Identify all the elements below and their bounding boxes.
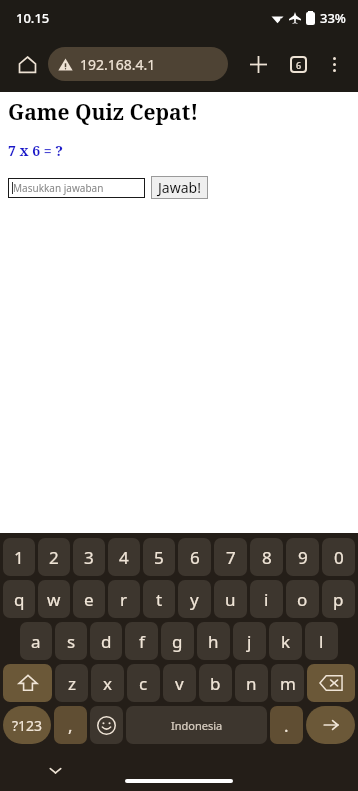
button[interactable]: Hide keyboard [42,757,68,783]
button[interactable]: New tab [240,46,276,82]
button[interactable]: 6 [178,538,211,576]
staticText: g [172,630,183,653]
staticText: ?123 [12,716,43,735]
staticText: Game Quiz Cepat! [8,98,199,127]
staticText: y [190,588,199,611]
staticText: n [246,672,257,695]
staticText: k [281,630,291,653]
button[interactable]: p [322,580,355,618]
button[interactable]: u [214,580,247,618]
staticText: i [264,588,269,611]
button[interactable]: k [269,622,302,660]
button[interactable]: 5 [143,538,175,576]
button[interactable]: l [305,622,338,660]
button[interactable]: Emoji [90,706,123,744]
staticText: v [175,672,184,695]
button[interactable]: d [90,622,122,660]
button[interactable]: x [91,664,124,702]
button[interactable]: . [270,706,303,744]
button[interactable]: Enter [306,706,355,744]
staticText: Jawab! [158,178,201,197]
button[interactable]: ?123 [3,706,51,744]
staticText: e [84,588,94,611]
staticText: o [297,588,308,611]
button[interactable]: 192.168.4.1 [48,47,228,81]
button[interactable]: m [271,664,304,702]
staticText: d [101,630,112,653]
button[interactable]: Shift [3,664,52,702]
button[interactable]: o [286,580,319,618]
button[interactable]: c [127,664,160,702]
staticText: s [67,630,76,653]
staticText: a [31,630,41,653]
button[interactable]: 7 [214,538,247,576]
staticText: h [208,630,219,653]
staticText: 33% [320,9,346,27]
button[interactable]: b [199,664,232,702]
staticText: 9 [298,546,308,569]
button[interactable]: Masukkan jawaban [8,178,145,198]
button[interactable]: 4 [108,538,140,576]
staticText: 0 [334,546,344,569]
button[interactable]: 9 [286,538,319,576]
button[interactable]: 1 [3,538,35,576]
button[interactable]: Tabs: 6 [280,46,316,82]
staticText: 6 [296,59,302,71]
staticText: j [247,630,252,653]
staticText: p [333,588,344,611]
button[interactable]: i [250,580,283,618]
button[interactable]: q [3,580,35,618]
staticText: . [284,714,289,737]
staticText: Indonesia [171,718,223,733]
button[interactable]: 0 [322,538,355,576]
button[interactable]: f [125,622,158,660]
button[interactable]: v [163,664,196,702]
button[interactable]: Jawab! [151,176,208,199]
button[interactable]: n [235,664,268,702]
staticText: u [225,588,236,611]
staticText: q [14,588,25,611]
button[interactable]: j [233,622,266,660]
staticText: 6 [190,546,200,569]
button[interactable]: Backspace [307,664,355,702]
staticText: z [68,672,76,695]
button[interactable]: h [197,622,230,660]
staticText: 192.168.4.1 [80,55,156,74]
button[interactable]: a [20,622,52,660]
button[interactable]: Home [10,47,44,81]
button[interactable]: y [178,580,211,618]
staticText: r [120,588,128,611]
staticText: 10.15 [16,9,50,27]
button[interactable]: 2 [38,538,70,576]
staticText: 2 [49,546,59,569]
button[interactable]: z [55,664,88,702]
staticText: 3 [84,546,94,569]
staticText: Masukkan jawaban [13,181,104,195]
button[interactable]: r [108,580,140,618]
staticText: x [103,672,112,695]
button[interactable]: 8 [250,538,283,576]
staticText: , [68,714,73,737]
staticText: m [280,672,296,695]
button[interactable]: More options [316,46,352,82]
button[interactable]: w [38,580,70,618]
button[interactable]: Indonesia [126,706,267,744]
staticText: 7 [226,546,236,569]
staticText: b [210,672,221,695]
staticText: l [319,630,324,653]
button[interactable]: s [55,622,87,660]
button[interactable]: t [143,580,175,618]
staticText: 8 [262,546,272,569]
staticText: 5 [154,546,164,569]
staticText: f [139,630,145,653]
button[interactable]: 3 [73,538,105,576]
staticText: c [139,672,148,695]
button[interactable]: e [73,580,105,618]
button[interactable]: g [161,622,194,660]
staticText: w [47,588,61,611]
staticText: 1 [14,546,24,569]
staticText: t [156,588,163,611]
button[interactable]: , [54,706,87,744]
staticText: 7 x 6 = ? [8,141,64,160]
staticText: 4 [119,546,129,569]
